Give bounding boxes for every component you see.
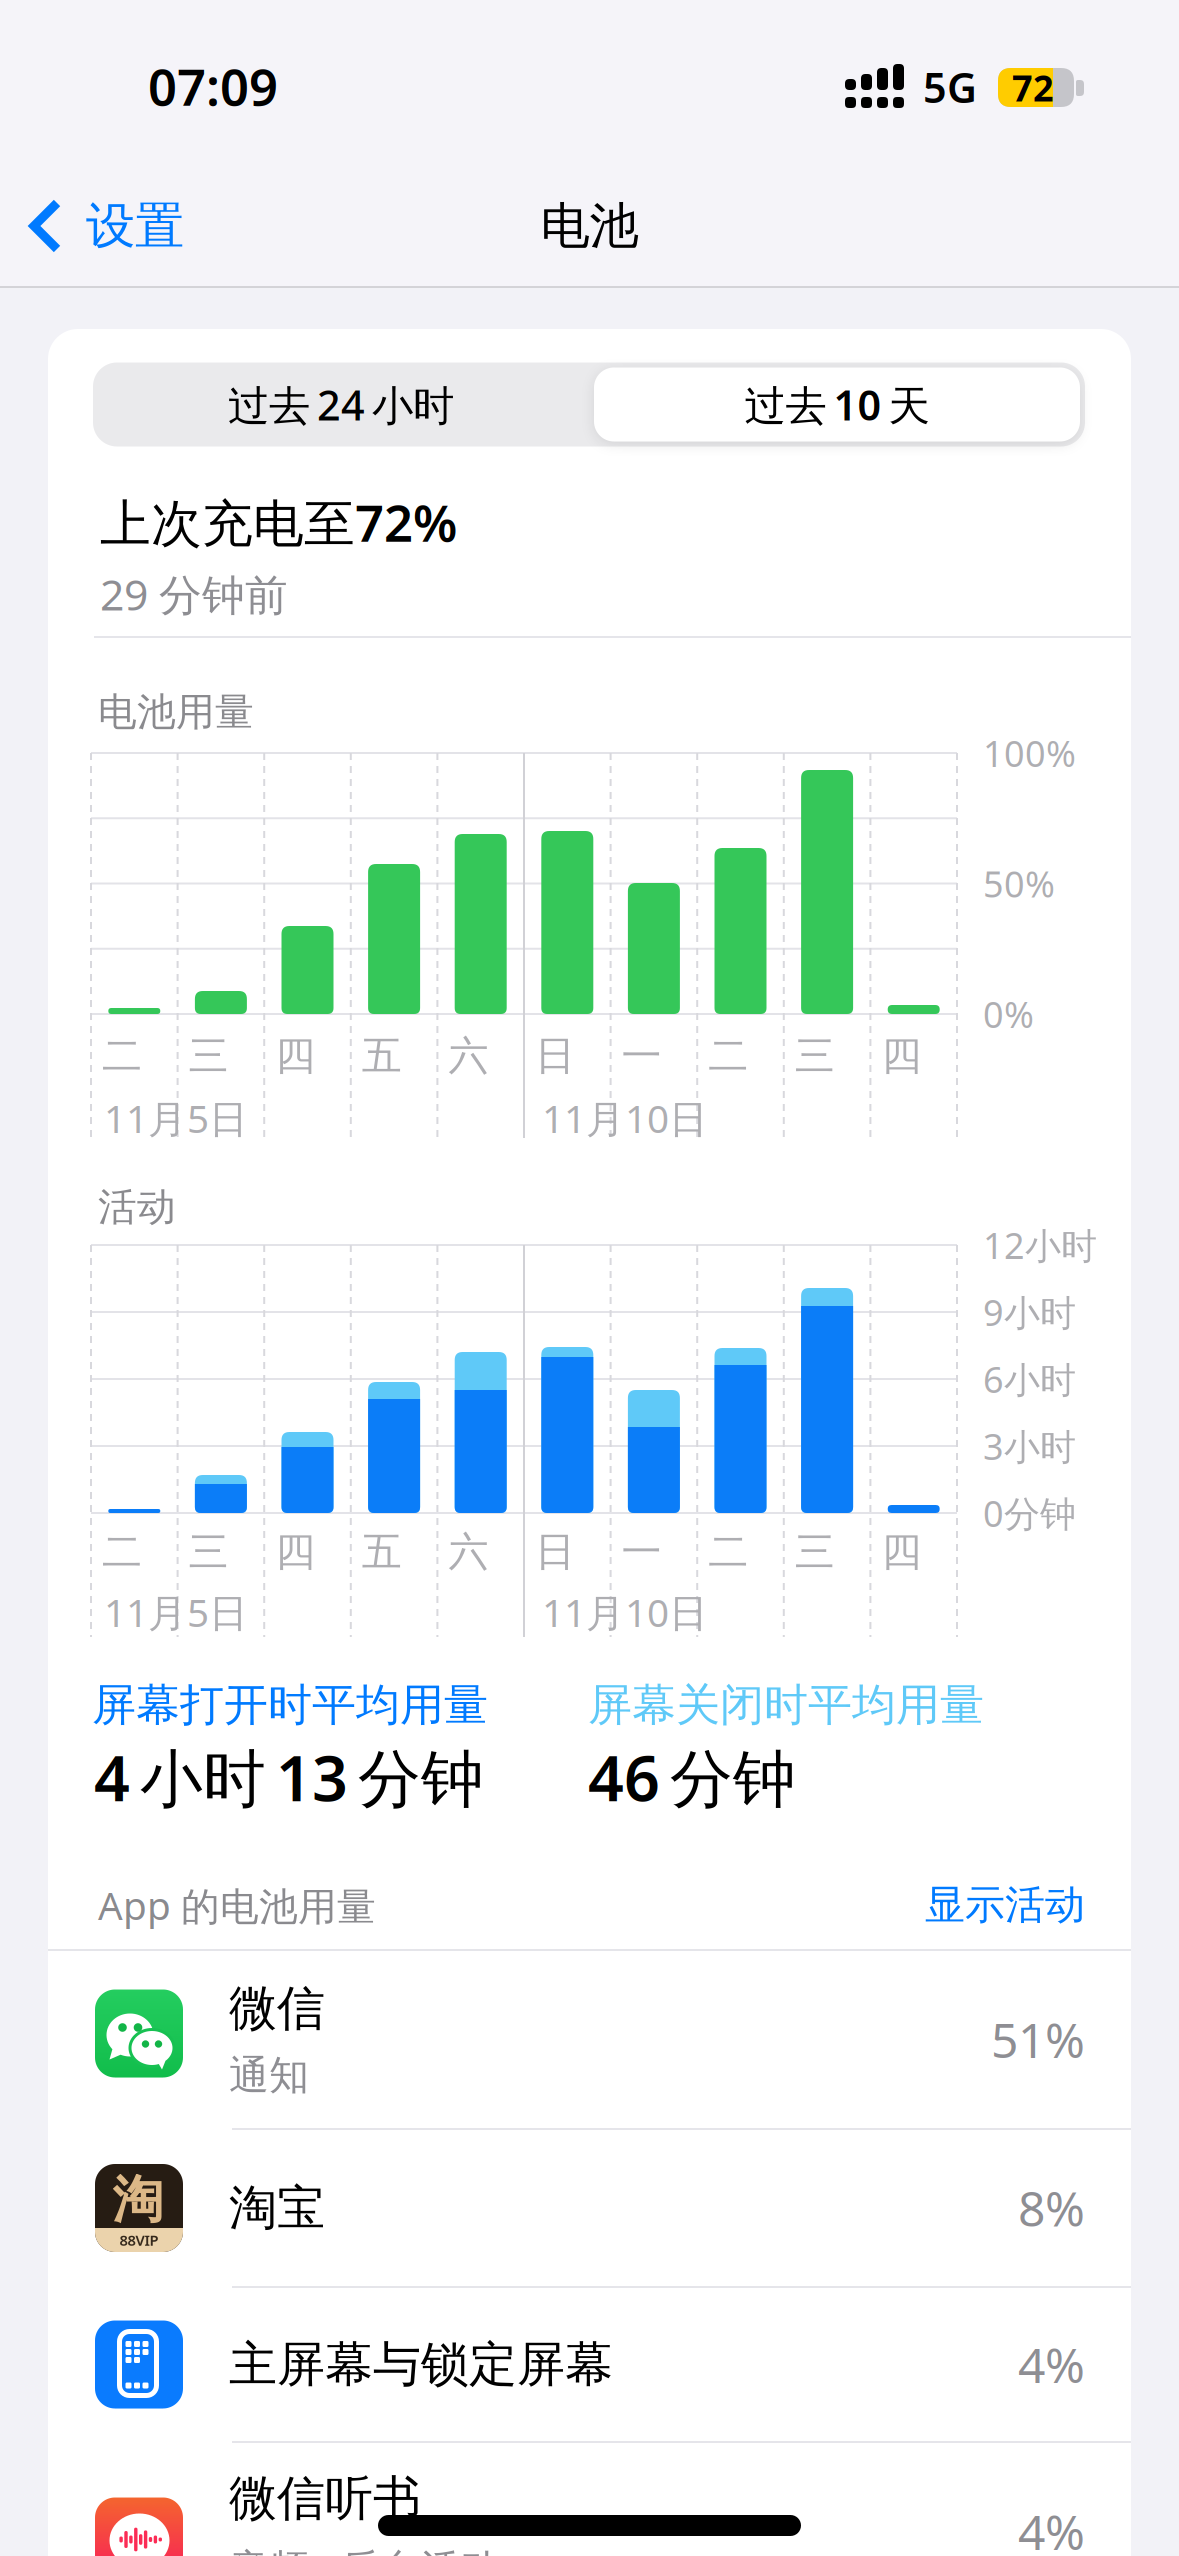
staticText: 4%	[1018, 2500, 1085, 2556]
staticText: 过去 24 小时	[228, 377, 454, 432]
staticText: 日	[535, 1527, 575, 1576]
button[interactable]: 返回设置	[28, 196, 184, 256]
staticText: 11月5日	[104, 1092, 248, 1144]
staticText: 一	[622, 1527, 662, 1576]
staticText: 9小时	[983, 1288, 1076, 1336]
staticText: 四	[881, 1527, 921, 1576]
staticText: 六	[448, 1527, 488, 1576]
staticText: 0分钟	[983, 1489, 1076, 1537]
staticText: 07:09	[148, 52, 278, 120]
staticText: 上次充电至72%	[100, 488, 457, 556]
staticText: App 的电池用量	[98, 1879, 376, 1931]
staticText: 29 分钟前	[100, 566, 288, 622]
staticText: 72	[1012, 64, 1054, 111]
staticText: 88VIP	[119, 2230, 158, 2250]
staticText: 46 分钟	[588, 1735, 796, 1819]
staticText: 五	[362, 1031, 402, 1080]
staticText: 100%	[983, 729, 1076, 777]
staticText: 过去 10 天	[744, 377, 929, 432]
staticText: 二	[102, 1527, 142, 1576]
staticText: 11月10日	[542, 1092, 708, 1144]
staticText: 50%	[983, 860, 1055, 907]
button[interactable]: 微信听书	[48, 2442, 1131, 2556]
staticText: 12小时	[983, 1221, 1097, 1269]
staticText: 三	[189, 1527, 229, 1576]
staticText: 11月10日	[542, 1586, 708, 1638]
staticText: 三	[189, 1031, 229, 1080]
staticText: 主屏幕与锁定屏幕	[229, 2335, 613, 2394]
staticText: 0%	[983, 990, 1034, 1038]
staticText: 日	[535, 1031, 575, 1080]
staticText: 4%	[1018, 2333, 1085, 2396]
staticText: 4 小时 13 分钟	[94, 1735, 484, 1819]
staticText: 四	[275, 1031, 315, 1080]
staticText: 3小时	[983, 1422, 1076, 1470]
staticText: 二	[708, 1527, 748, 1576]
staticText: 一	[622, 1031, 662, 1080]
staticText: 电池用量	[98, 688, 254, 736]
staticText: 三	[795, 1031, 835, 1080]
staticText: 8%	[1018, 2176, 1085, 2240]
staticText: 三	[795, 1527, 835, 1576]
staticText: 二	[708, 1031, 748, 1080]
button[interactable]: 显示活动	[925, 1880, 1085, 1929]
staticText: 四	[275, 1527, 315, 1576]
staticText: 微信	[229, 1979, 325, 2038]
button[interactable]: 过去 10 天	[594, 367, 1080, 441]
staticText: 通知	[229, 2051, 309, 2100]
staticText: 屏幕打开时平均用量	[92, 1678, 488, 1732]
staticText: 6小时	[983, 1355, 1076, 1403]
staticText: 淘	[112, 2169, 163, 2231]
button[interactable]: 微信	[48, 1950, 1131, 2129]
button[interactable]: 淘	[48, 2129, 1131, 2287]
staticText: 显示活动	[925, 1880, 1085, 1929]
staticText: 淘宝	[229, 2178, 325, 2237]
staticText: 电池	[540, 196, 638, 256]
staticText: 11月5日	[104, 1586, 248, 1638]
staticText: 二	[102, 1031, 142, 1080]
staticText: 设置	[86, 196, 184, 256]
staticText: 音频 · 后台活动	[229, 2541, 500, 2556]
staticText: 六	[448, 1031, 488, 1080]
staticText: 活动	[98, 1183, 176, 1231]
staticText: 51%	[991, 2008, 1085, 2071]
staticText: 五	[362, 1527, 402, 1576]
staticText: 屏幕关闭时平均用量	[588, 1678, 984, 1732]
staticText: 5G	[923, 60, 977, 114]
button[interactable]: 主屏幕与锁定屏幕	[48, 2287, 1131, 2442]
button[interactable]: 过去 24 小时	[93, 362, 589, 446]
staticText: 微信听书	[229, 2469, 421, 2528]
staticText: 四	[881, 1031, 921, 1080]
